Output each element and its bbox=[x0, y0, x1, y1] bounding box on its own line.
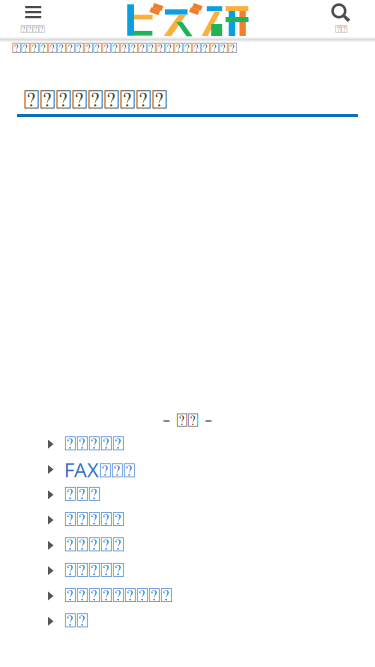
staticText: ⍰⍰⍰⍰⍰ bbox=[64, 510, 124, 530]
staticText: ⍰⍰⍰⍰⍰⍰⍰⍰⍰ bbox=[64, 586, 172, 606]
button[interactable]: ⍰⍰⍰⍰⍰ bbox=[0, 558, 375, 583]
staticText: ⍰⍰⍰⍰⍰⍰⍰⍰⍰ bbox=[24, 87, 168, 113]
staticText: ⍰⍰⍰⍰ bbox=[21, 24, 45, 35]
staticText: ⍰⍰ bbox=[335, 24, 347, 35]
staticText: FAX⍰⍰⍰ bbox=[64, 456, 135, 483]
button[interactable]: ⍰⍰⍰⍰⍰ bbox=[0, 533, 375, 558]
button[interactable]: ⍰⍰⍰ bbox=[0, 482, 375, 507]
staticText: ⍰⍰ bbox=[176, 412, 198, 430]
button[interactable]: ⍰⍰⍰⍰⍰⍰⍰⍰⍰ bbox=[0, 583, 375, 609]
button[interactable]: FAX⍰⍰⍰ bbox=[0, 457, 375, 482]
staticText: ⍰⍰ bbox=[64, 611, 88, 631]
button[interactable]: Search bbox=[322, 0, 366, 39]
button[interactable]: Menu bbox=[16, 0, 68, 39]
button[interactable]: ⍰⍰⍰⍰⍰ bbox=[0, 507, 375, 533]
staticText: ⍰⍰⍰⍰⍰ bbox=[64, 561, 124, 580]
staticText: ⍰⍰⍰⍰⍰ bbox=[64, 434, 124, 454]
staticText: ⍰⍰⍰ bbox=[64, 485, 100, 504]
button[interactable]: ⍰⍰⍰⍰⍰ bbox=[0, 431, 375, 457]
button[interactable]: ⍰⍰ bbox=[0, 609, 375, 634]
button[interactable]: Home bbox=[120, 0, 254, 38]
staticText: ⍰⍰⍰⍰⍰⍰⍰⍰⍰⍰⍰⍰⍰⍰⍰⍰⍰⍰⍰⍰⍰⍰⍰⍰⍰ bbox=[12, 41, 237, 56]
staticText: ⍰⍰⍰⍰⍰ bbox=[64, 536, 124, 555]
